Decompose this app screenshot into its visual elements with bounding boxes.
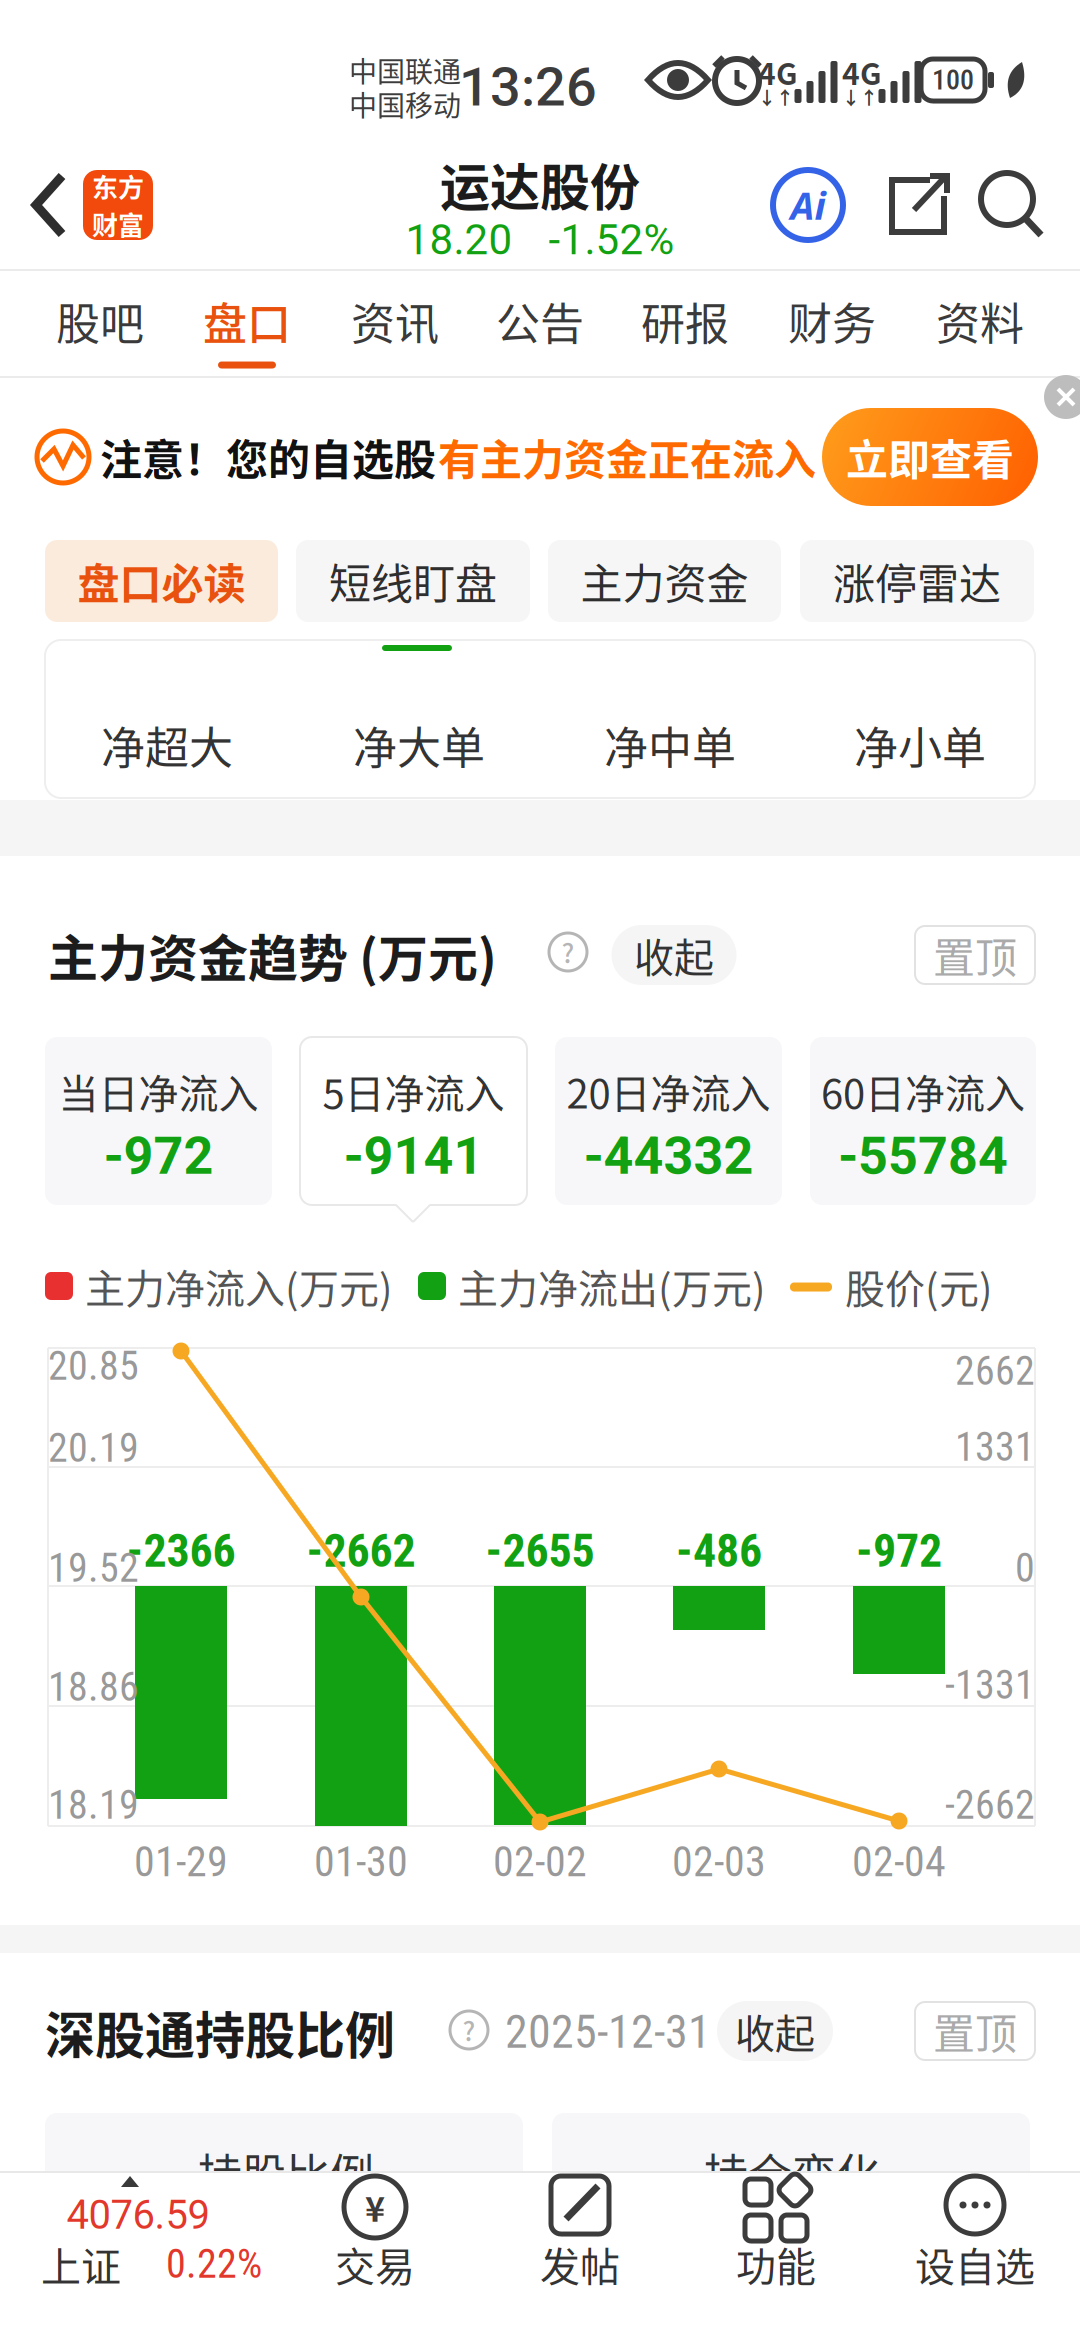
staticText: -1331 <box>945 1662 1035 1708</box>
staticText: 0.22% <box>166 2241 262 2287</box>
staticText: -9141 <box>343 1125 483 1186</box>
staticText: 财富 <box>92 205 144 243</box>
button[interactable]: 功能 <box>695 2172 857 2340</box>
staticText: ? <box>462 2011 475 2049</box>
staticText: 置顶 <box>933 2001 1017 2061</box>
staticText: 1331 <box>955 1424 1035 1470</box>
staticText: 功能 <box>736 2235 816 2293</box>
button[interactable]: 20日净流入 <box>555 1037 782 1205</box>
staticText: -2662 <box>945 1782 1035 1828</box>
staticText: 02-03 <box>672 1837 766 1887</box>
button[interactable]: Ai <box>772 169 844 241</box>
button[interactable]: 60日净流入 <box>810 1037 1036 1205</box>
button[interactable] <box>0 0 1080 2340</box>
button[interactable]: 短线盯盘 <box>296 540 530 622</box>
staticText: Ai <box>790 179 825 231</box>
button[interactable]: 置顶 <box>915 926 1035 984</box>
staticText: 中国联通 <box>349 50 461 90</box>
staticText: 02-02 <box>493 1837 587 1887</box>
staticText: 18.19 <box>48 1782 139 1828</box>
staticText: 上证 <box>41 2235 121 2293</box>
staticText: 股吧 <box>56 289 144 353</box>
button[interactable]: 主力资金 <box>548 540 781 622</box>
staticText: -55784 <box>838 1125 1008 1186</box>
staticText: 东方 <box>92 167 144 205</box>
staticText: 股价(元) <box>845 1257 993 1315</box>
button[interactable]: 5日净流入 <box>300 1037 527 1205</box>
staticText: 01-29 <box>134 1837 228 1887</box>
staticText: 交易 <box>335 2235 415 2293</box>
staticText: 净大单 <box>353 713 485 777</box>
button[interactable] <box>884 174 950 236</box>
button[interactable]: 置顶 <box>915 2002 1035 2060</box>
staticText: ↓↑ <box>758 84 794 110</box>
staticText: 60日净流入 <box>821 1062 1025 1120</box>
staticText: 2662 <box>955 1348 1035 1394</box>
staticText: 净超大 <box>101 713 233 777</box>
button[interactable]: 发帖 <box>500 2172 660 2340</box>
button[interactable]: 涨停雷达 <box>800 540 1034 622</box>
staticText: 主力净流出(万元) <box>458 1257 766 1315</box>
button[interactable]: 资讯 <box>350 279 440 365</box>
staticText: 18.20 <box>405 215 512 265</box>
staticText: 盘口 <box>203 289 291 353</box>
button[interactable]: 4076.59 <box>0 2172 290 2340</box>
button[interactable]: 收起 <box>611 925 736 985</box>
staticText: 主力资金趋势 (万元) <box>48 919 497 991</box>
staticText: 持仓变化 <box>704 2140 880 2204</box>
staticText: -972 <box>856 1524 942 1578</box>
button[interactable]: 财务 <box>787 279 877 365</box>
staticText: 20日净流入 <box>566 1062 770 1120</box>
staticText: -486 <box>676 1524 762 1578</box>
staticText: 20.85 <box>48 1343 139 1389</box>
staticText: 中国移动 <box>349 84 461 124</box>
button[interactable]: 设自选 <box>894 2172 1056 2340</box>
button[interactable]: 立即查看 <box>822 408 1038 506</box>
staticText: 资讯 <box>351 289 439 353</box>
staticText: 4G <box>842 50 882 94</box>
staticText: -2655 <box>485 1524 594 1578</box>
staticText: -972 <box>103 1125 213 1186</box>
staticText: 深股通持股比例 <box>45 1996 395 2068</box>
button[interactable]: 公告 <box>495 279 585 365</box>
staticText: 注意！您的自选股 <box>100 427 436 487</box>
staticText: 短线盯盘 <box>329 551 497 611</box>
button[interactable]: 研报 <box>640 279 730 365</box>
staticText: 持股比例 <box>198 2140 374 2204</box>
staticText: 置顶 <box>933 925 1017 985</box>
button[interactable]: ¥ <box>295 2172 455 2340</box>
button[interactable]: 收起 <box>717 2001 833 2061</box>
button[interactable]: 盘口必读 <box>45 540 278 622</box>
staticText: 100 <box>932 64 974 96</box>
staticText: 01-30 <box>314 1837 408 1887</box>
button[interactable] <box>979 171 1045 237</box>
button[interactable]: 东方 <box>83 170 153 240</box>
staticText: 0 <box>1015 1545 1035 1591</box>
staticText: 5日净流入 <box>322 1062 504 1120</box>
staticText: 当日净流入 <box>58 1062 258 1120</box>
button[interactable] <box>1044 375 1080 419</box>
button[interactable]: 股吧 <box>55 279 145 365</box>
staticText: -2662 <box>306 1524 415 1578</box>
staticText: -1.52% <box>548 215 674 265</box>
button[interactable]: 当日净流入 <box>45 1037 272 1205</box>
button[interactable]: 资料 <box>935 279 1025 365</box>
staticText: 立即查看 <box>846 427 1014 487</box>
staticText: 2025-12-31 <box>505 2005 711 2059</box>
staticText: 净中单 <box>604 713 736 777</box>
staticText: 资料 <box>936 289 1024 353</box>
staticText: 发帖 <box>540 2235 620 2293</box>
staticText: 有主力资金正在流入 <box>438 427 816 487</box>
button[interactable]: 盘口 <box>202 279 292 365</box>
staticText: 4076.59 <box>66 2192 209 2238</box>
staticText: ↓↑ <box>842 84 878 110</box>
staticText: 涨停雷达 <box>833 551 1001 611</box>
staticText: 运达股份 <box>440 148 640 220</box>
staticText: -2366 <box>126 1524 235 1578</box>
staticText: 主力净流入(万元) <box>85 1257 393 1315</box>
staticText: ¥ <box>365 2182 385 2232</box>
staticText: 13:26 <box>459 55 597 119</box>
staticText: 02-04 <box>852 1837 946 1887</box>
staticText: 18.86 <box>48 1664 139 1710</box>
staticText: -44332 <box>583 1125 753 1186</box>
